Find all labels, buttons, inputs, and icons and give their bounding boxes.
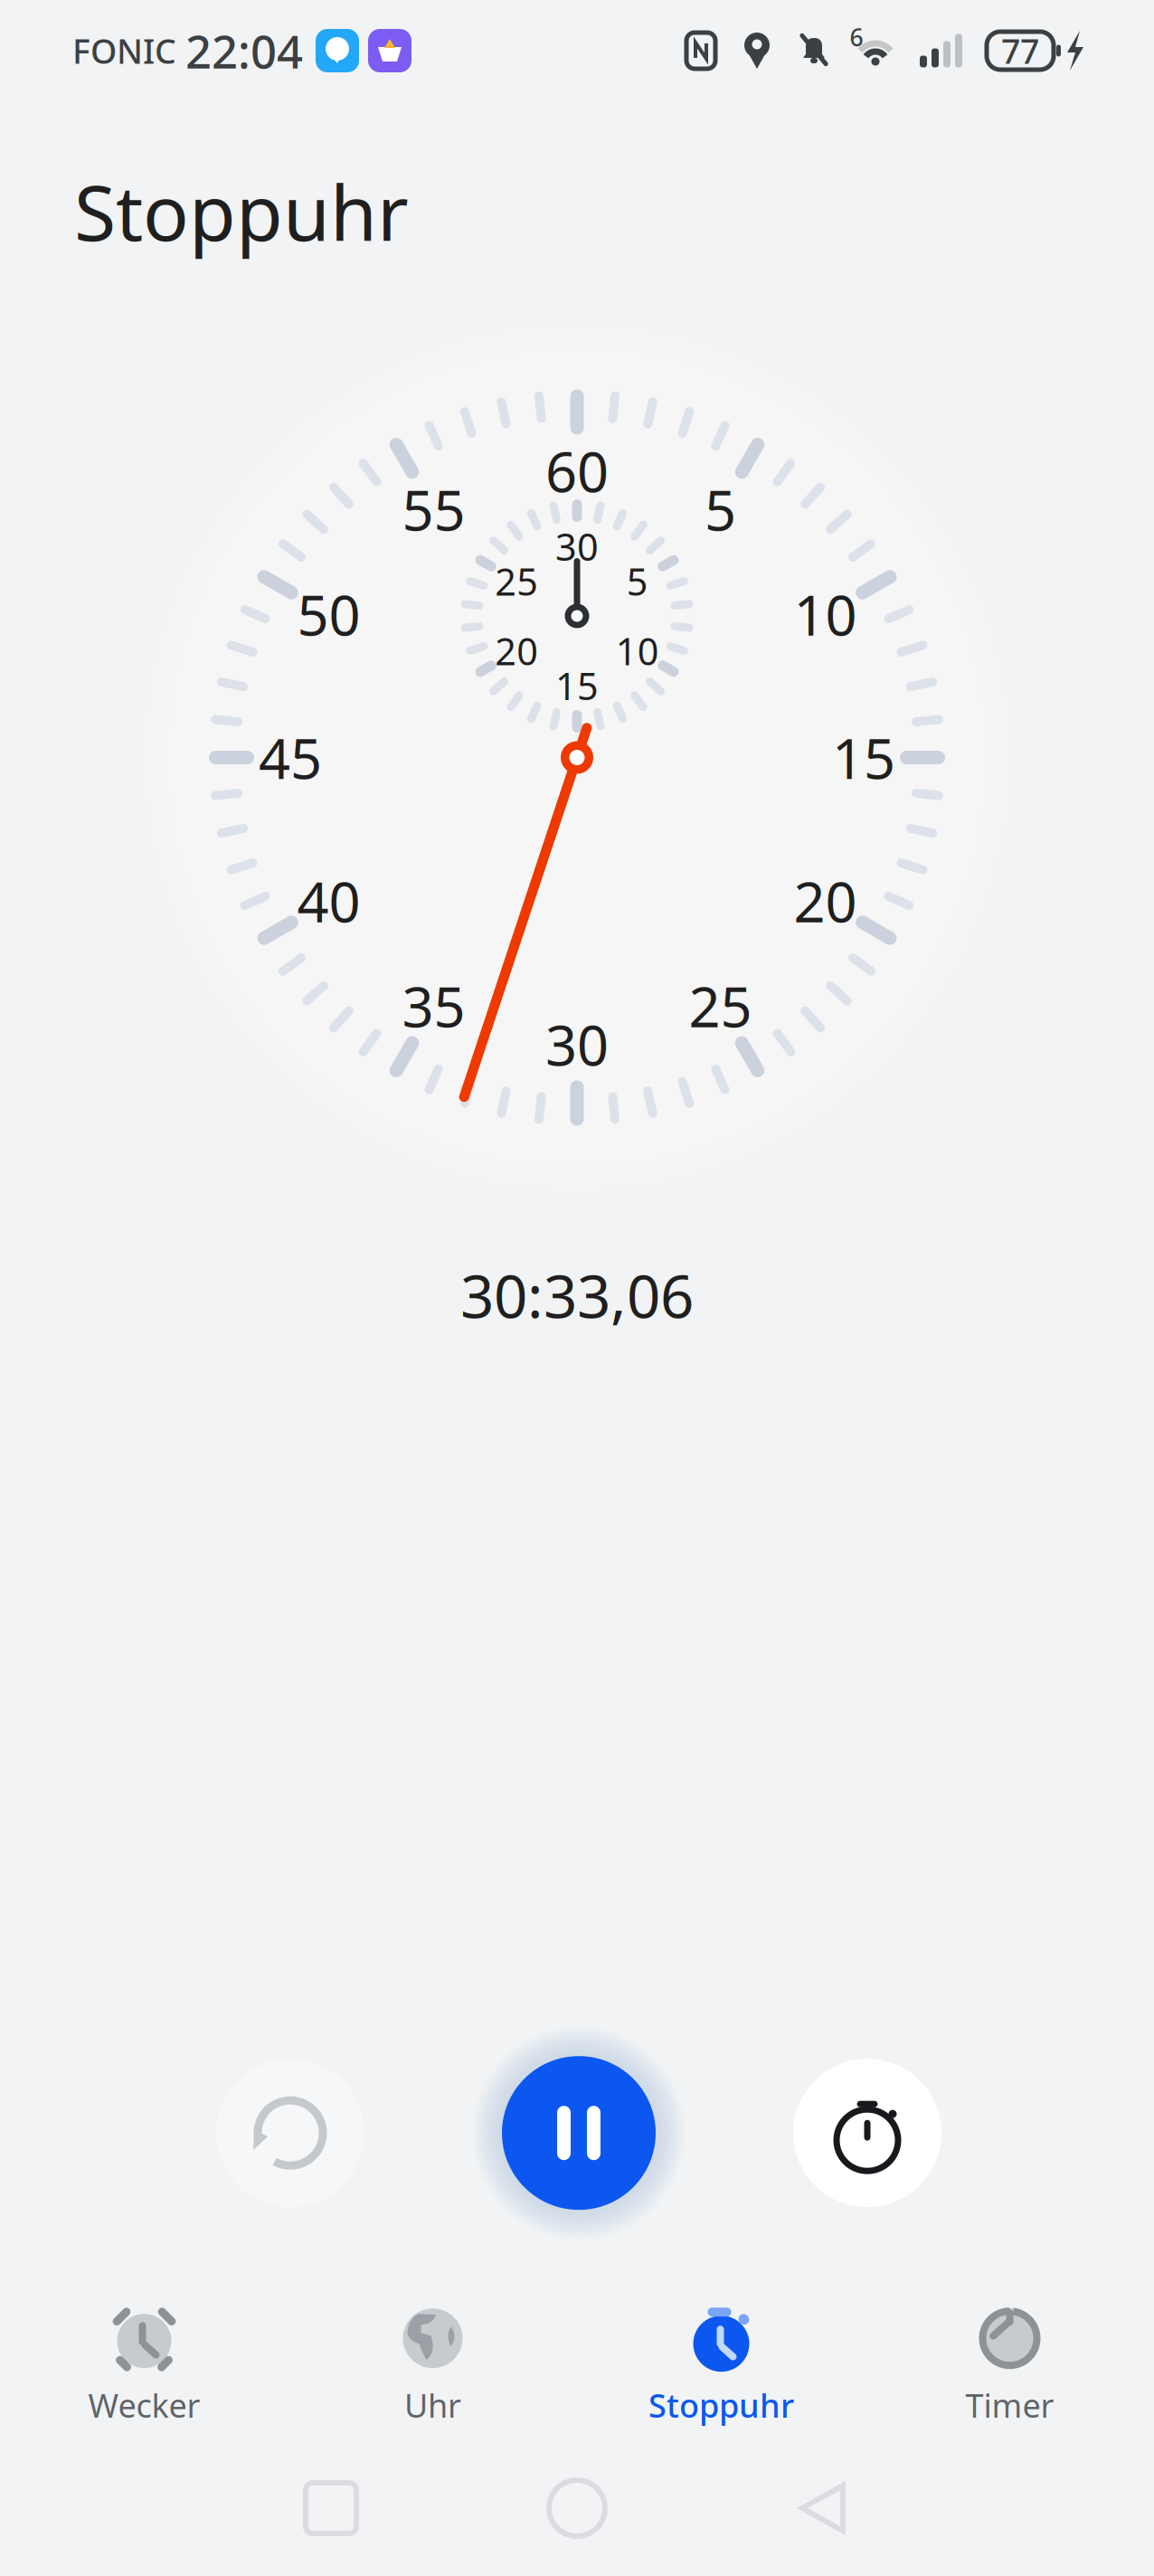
staticText: 15 <box>555 661 599 710</box>
staticText: 35 <box>402 969 465 1043</box>
staticText: 50 <box>297 577 360 651</box>
button[interactable]: Runde <box>793 2059 941 2207</box>
button[interactable]: Startbildschirm <box>505 2478 649 2538</box>
staticText: Wecker <box>88 2384 200 2427</box>
staticText: 5 <box>626 556 648 606</box>
button[interactable]: Timer <box>865 2304 1154 2427</box>
button[interactable]: Zurücksetzen <box>216 2059 364 2207</box>
staticText: 22:04 <box>185 20 303 81</box>
staticText: 30 <box>555 522 599 571</box>
staticText: 55 <box>402 472 465 546</box>
staticText: 60 <box>545 434 609 508</box>
staticText: 25 <box>689 969 752 1043</box>
button[interactable]: Zurück <box>751 2478 895 2538</box>
staticText: 30:33,06 <box>460 1256 694 1334</box>
staticText: 15 <box>832 721 895 794</box>
staticText: 6 <box>850 21 863 53</box>
staticText: Stoppuhr <box>648 2384 794 2427</box>
staticText: 40 <box>297 864 360 938</box>
staticText: Uhr <box>404 2384 461 2427</box>
staticText: FONIC <box>72 28 176 73</box>
staticText: 5 <box>705 472 736 546</box>
button[interactable]: Übersicht <box>259 2478 403 2538</box>
button[interactable]: Stoppuhr <box>577 2304 865 2427</box>
staticText: 77 <box>1001 28 1039 73</box>
staticText: 30 <box>545 1007 609 1081</box>
staticText: 10 <box>794 577 857 651</box>
button[interactable]: Uhr <box>288 2304 577 2427</box>
staticText: Timer <box>965 2384 1054 2427</box>
staticText: 45 <box>259 721 322 794</box>
button[interactable]: Pause <box>502 2056 656 2210</box>
staticText: 25 <box>495 556 538 606</box>
staticText: 20 <box>794 864 857 938</box>
staticText: 10 <box>616 626 659 676</box>
button[interactable]: Wecker <box>0 2304 288 2427</box>
staticText: Stoppuhr <box>74 161 409 262</box>
staticText: 20 <box>495 626 538 676</box>
